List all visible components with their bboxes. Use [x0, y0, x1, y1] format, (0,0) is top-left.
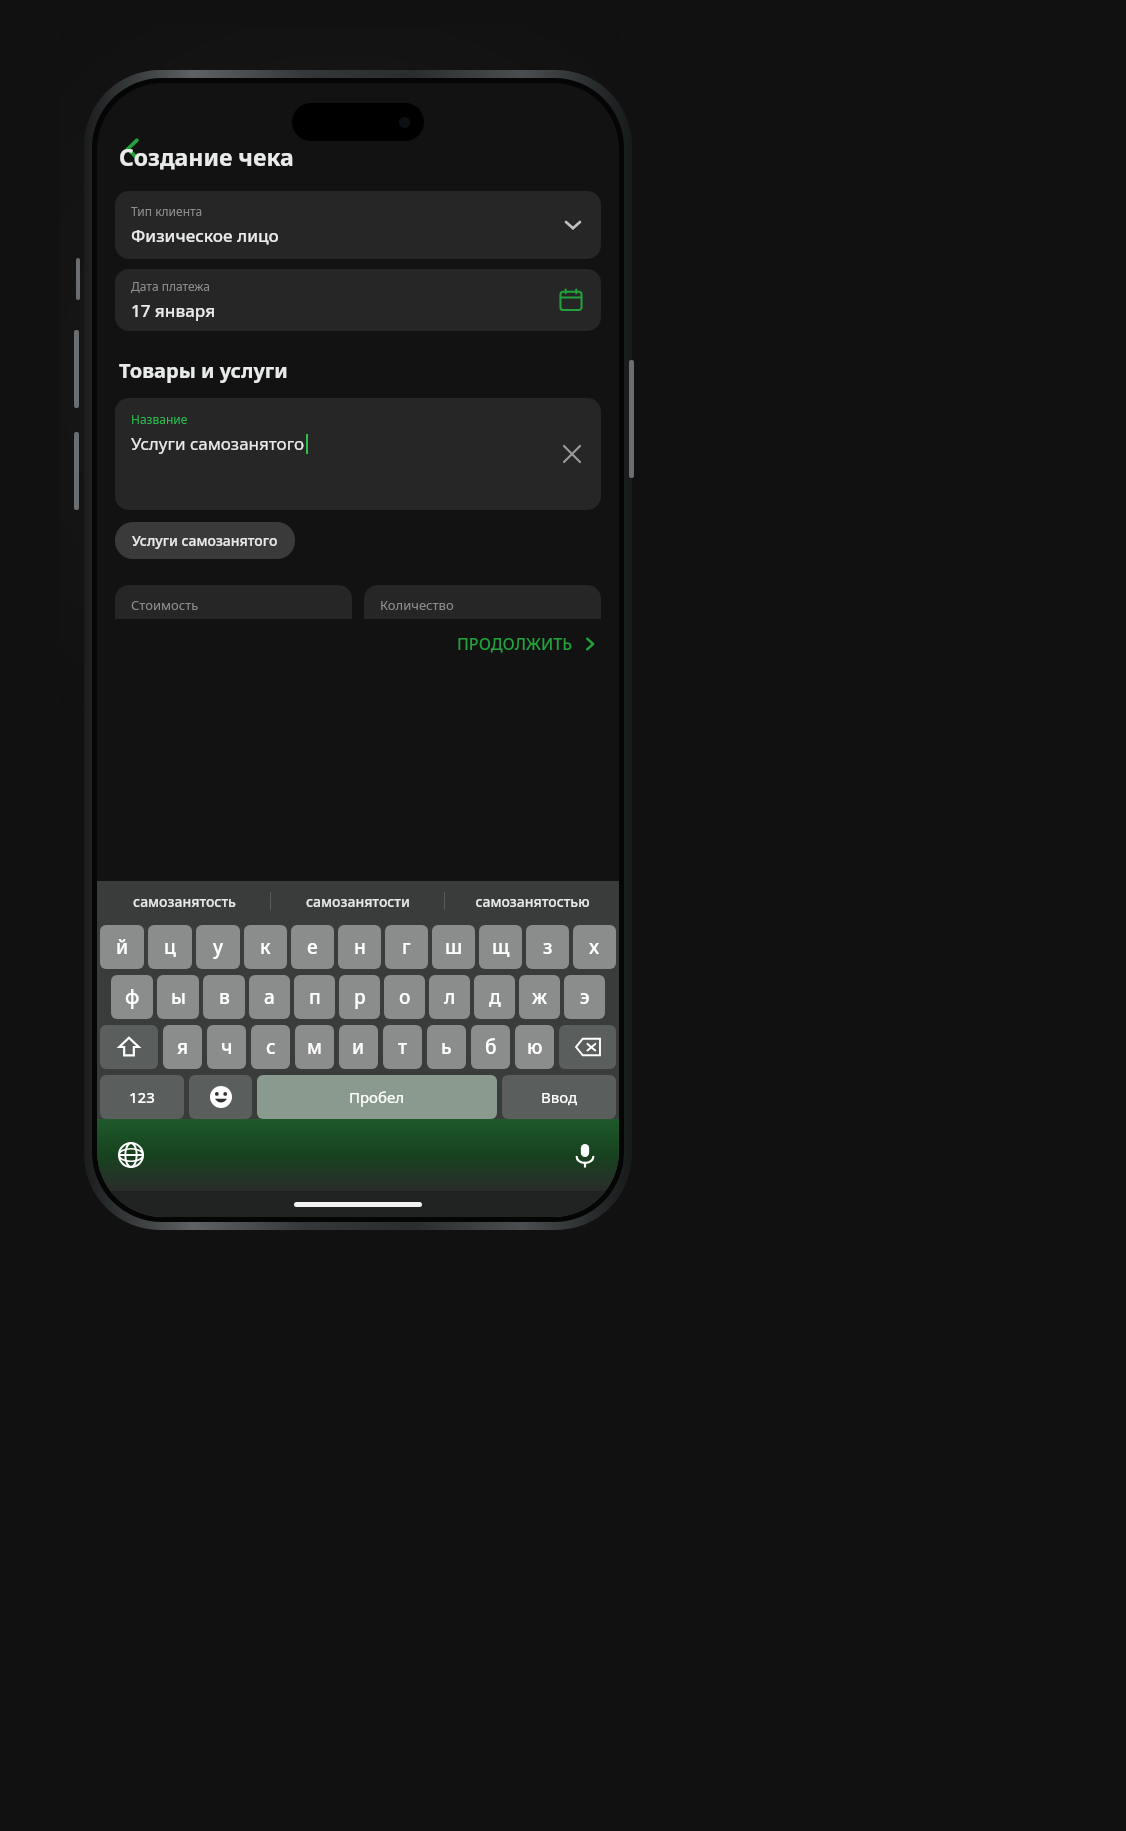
button[interactable]: ф — [111, 975, 153, 1019]
staticText: щ — [492, 934, 510, 960]
staticText: ц — [164, 934, 176, 960]
button[interactable]: е — [291, 925, 334, 969]
staticText: л — [444, 984, 456, 1010]
staticText: самозанятости — [306, 892, 410, 911]
staticText: Пробел — [349, 1087, 405, 1107]
staticText: я — [177, 1034, 189, 1060]
button[interactable]: ч — [207, 1025, 246, 1069]
staticText: Дата платежа — [131, 278, 210, 294]
staticText: Количество — [380, 596, 454, 614]
button[interactable]: Услуги самозанятого — [115, 522, 295, 559]
button[interactable]: ы — [157, 975, 199, 1019]
button[interactable]: в — [203, 975, 245, 1019]
staticText: э — [580, 984, 590, 1010]
staticText: Услуги самозанятого — [132, 531, 278, 550]
button[interactable]: Название — [115, 398, 601, 510]
staticText: ю — [527, 1034, 543, 1060]
staticText: г — [402, 934, 411, 960]
other: Раскрыть — [563, 215, 583, 235]
staticText: Тип клиента — [131, 203, 203, 219]
staticText: Стоимость — [131, 596, 199, 614]
staticText: е — [307, 934, 318, 960]
staticText: в — [219, 984, 230, 1010]
button[interactable]: Сменить язык — [111, 1135, 151, 1175]
button[interactable]: щ — [479, 925, 522, 969]
staticText: х — [589, 934, 600, 960]
button[interactable]: н — [338, 925, 381, 969]
button[interactable]: б — [471, 1025, 510, 1069]
button[interactable]: г — [385, 925, 428, 969]
staticText: Физическое лицо — [131, 224, 279, 247]
button[interactable]: Голосовой ввод — [565, 1135, 605, 1175]
staticText: ж — [532, 984, 548, 1010]
staticText: н — [354, 934, 366, 960]
button[interactable]: Эмодзи — [189, 1075, 252, 1119]
button[interactable]: а — [249, 975, 290, 1019]
staticText: о — [399, 984, 411, 1010]
staticText: ш — [445, 934, 463, 960]
button[interactable]: у — [196, 925, 240, 969]
button[interactable]: ю — [515, 1025, 554, 1069]
staticText: д — [489, 984, 501, 1010]
button[interactable]: п — [294, 975, 335, 1019]
button[interactable]: Стоимость — [115, 585, 352, 619]
staticText: и — [352, 1034, 365, 1060]
staticText: ф — [125, 984, 140, 1010]
button[interactable]: и — [339, 1025, 378, 1069]
button[interactable]: х — [573, 925, 616, 969]
staticText: самозанятость — [133, 892, 236, 911]
button[interactable]: Пробел — [257, 1075, 497, 1119]
staticText: й — [116, 934, 129, 960]
other: Выбрать дату — [559, 288, 583, 312]
staticText: ь — [441, 1034, 452, 1060]
button[interactable]: Тип клиента — [115, 191, 601, 259]
button[interactable]: Ввод — [502, 1075, 616, 1119]
button[interactable]: ПРОДОЛЖИТЬ — [451, 629, 603, 659]
button[interactable]: Удалить — [559, 1025, 616, 1069]
staticText: п — [309, 984, 321, 1010]
staticText: к — [260, 934, 271, 960]
staticText: Ввод — [541, 1087, 578, 1107]
staticText: у — [213, 934, 224, 960]
button[interactable]: самозанятости — [271, 881, 445, 921]
staticText: р — [354, 984, 366, 1010]
button[interactable]: Дата платежа — [115, 269, 601, 331]
button[interactable]: т — [383, 1025, 422, 1069]
staticText: 123 — [129, 1087, 155, 1107]
button[interactable]: л — [429, 975, 470, 1019]
button[interactable]: Shift — [100, 1025, 158, 1069]
button[interactable]: 123 — [100, 1075, 184, 1119]
staticText: Создание чека — [119, 141, 294, 172]
button[interactable]: ж — [519, 975, 560, 1019]
button[interactable]: Количество — [364, 585, 601, 619]
staticText: 17 января — [131, 299, 216, 322]
button[interactable]: ш — [432, 925, 475, 969]
button[interactable]: самозанятостью — [445, 881, 619, 921]
button[interactable]: й — [100, 925, 144, 969]
button[interactable]: з — [526, 925, 569, 969]
button[interactable]: с — [251, 1025, 290, 1069]
staticText: с — [266, 1034, 276, 1060]
button[interactable]: к — [244, 925, 287, 969]
button[interactable]: о — [384, 975, 425, 1019]
staticText: самозанятостью — [475, 892, 590, 911]
staticText: ПРОДОЛЖИТЬ — [457, 633, 573, 655]
button[interactable]: ь — [427, 1025, 466, 1069]
button[interactable]: м — [295, 1025, 334, 1069]
staticText: Товары и услуги — [119, 357, 288, 384]
button[interactable]: я — [163, 1025, 202, 1069]
button[interactable]: д — [474, 975, 515, 1019]
button[interactable]: э — [564, 975, 605, 1019]
staticText: ч — [221, 1034, 233, 1060]
button[interactable]: ц — [148, 925, 192, 969]
button[interactable]: Назад — [111, 127, 155, 171]
other: Shift — [118, 1036, 140, 1058]
staticText: а — [264, 984, 275, 1010]
button[interactable]: Очистить — [553, 435, 591, 473]
staticText: з — [543, 934, 553, 960]
staticText: т — [398, 1034, 408, 1060]
staticText: м — [307, 1034, 322, 1060]
staticText: Услуги самозанятого — [131, 432, 305, 455]
button[interactable]: р — [339, 975, 380, 1019]
button[interactable]: самозанятость — [97, 881, 271, 921]
